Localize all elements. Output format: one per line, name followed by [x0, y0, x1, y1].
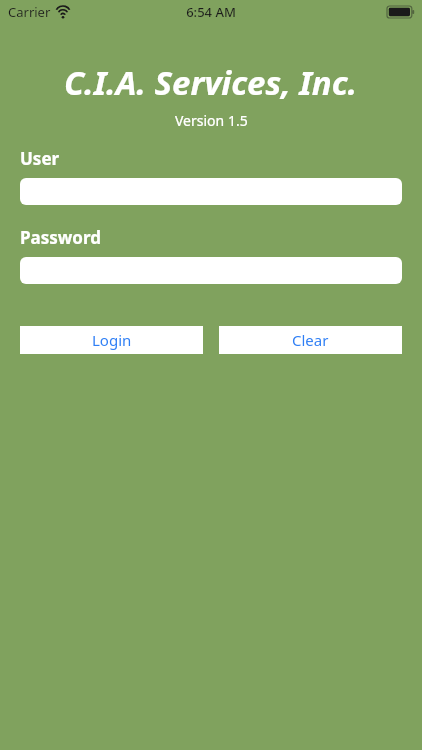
- button[interactable]: Clear: [219, 326, 402, 354]
- staticText: Carrier: [8, 3, 51, 21]
- staticText: Version 1.5: [175, 111, 248, 130]
- staticText: Password: [20, 226, 101, 249]
- staticText: C.I.A. Services, Inc.: [64, 60, 358, 105]
- staticText: Clear: [292, 330, 329, 350]
- button[interactable]: [20, 178, 402, 205]
- staticText: 6:54 AM: [186, 3, 236, 21]
- button[interactable]: Login: [20, 326, 203, 354]
- staticText: Login: [92, 330, 132, 350]
- staticText: User: [20, 147, 60, 170]
- button[interactable]: [20, 257, 402, 284]
